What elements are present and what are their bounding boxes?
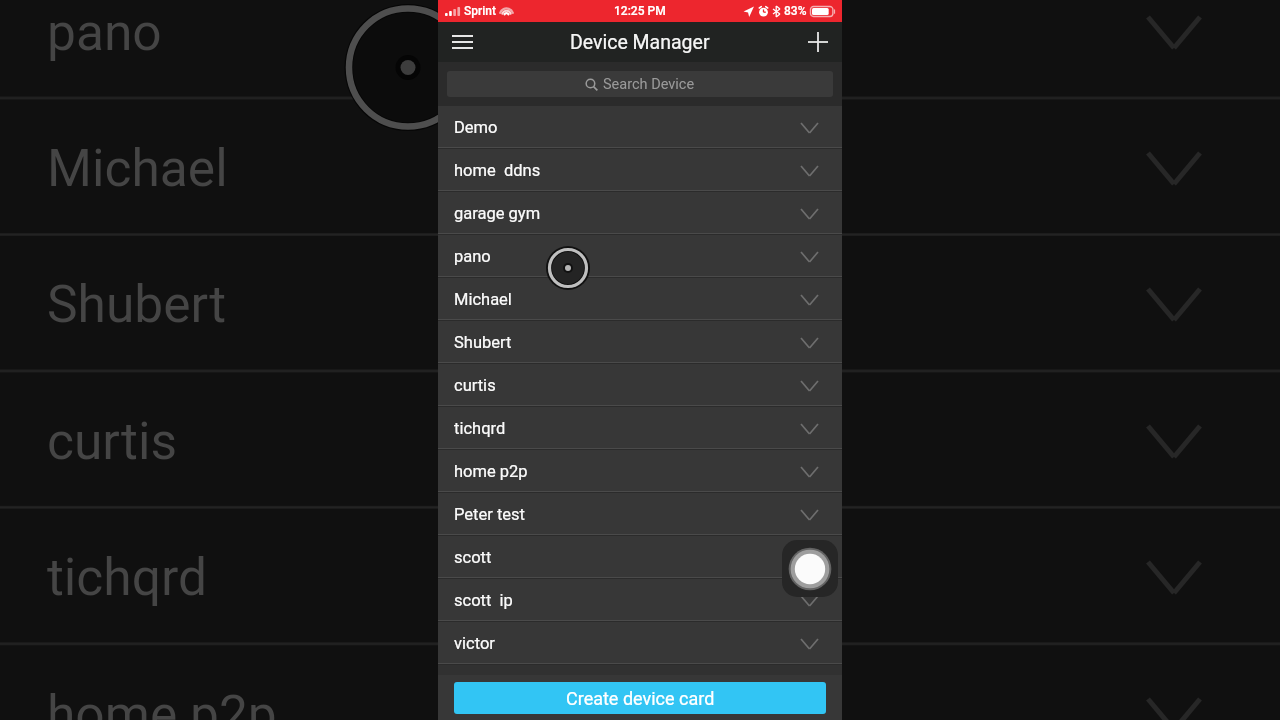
staticText: Shubert — [454, 333, 512, 352]
staticText: 12:25 PM — [614, 4, 666, 18]
staticText: pano — [47, 2, 162, 62]
button[interactable]: Add device — [800, 24, 836, 60]
staticText: victor — [454, 634, 495, 653]
staticText: Demo — [454, 118, 498, 137]
staticText: home p2p — [47, 684, 277, 720]
button[interactable]: scott ip — [438, 579, 842, 622]
button[interactable]: home p2p — [438, 450, 842, 493]
staticText: Create device card — [566, 688, 715, 709]
button[interactable]: tichqrd — [438, 407, 842, 450]
button[interactable]: home ddns — [438, 149, 842, 192]
button[interactable]: Search Device — [447, 71, 833, 97]
button[interactable]: Demo — [438, 106, 842, 149]
staticText: tichqrd — [47, 547, 207, 607]
staticText: curtis — [454, 376, 496, 395]
staticText: home ddns — [454, 161, 541, 180]
staticText: Michael — [454, 290, 512, 309]
staticText: Sprint — [464, 4, 496, 18]
staticText: Michael — [47, 138, 228, 198]
button[interactable]: pano — [438, 235, 842, 278]
button[interactable]: victor — [438, 622, 842, 665]
button[interactable]: AssistiveTouch — [782, 540, 838, 597]
button[interactable]: Peter test — [438, 493, 842, 536]
staticText: Device Manager — [570, 31, 710, 54]
button[interactable]: garage gym — [438, 192, 842, 235]
button[interactable]: Create device card — [454, 682, 826, 714]
staticText: 83% — [784, 4, 807, 18]
staticText: curtis — [47, 411, 178, 471]
staticText: Peter test — [454, 505, 525, 524]
staticText: Search Device — [603, 76, 695, 93]
button[interactable]: scott — [438, 536, 842, 579]
staticText: garage gym — [454, 204, 541, 223]
staticText: home p2p — [454, 462, 528, 481]
button[interactable]: Michael — [438, 278, 842, 321]
button[interactable]: curtis — [438, 364, 842, 407]
staticText: scott ip — [454, 591, 513, 610]
staticText: scott — [454, 548, 492, 567]
button[interactable]: Menu — [444, 24, 480, 60]
staticText: Shubert — [47, 274, 227, 334]
staticText: pano — [454, 247, 491, 266]
button[interactable]: Shubert — [438, 321, 842, 364]
staticText: tichqrd — [454, 419, 506, 438]
